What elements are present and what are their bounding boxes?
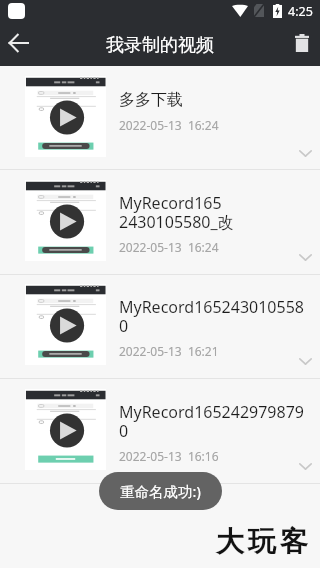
button[interactable]: Expand (291, 452, 319, 480)
button[interactable]: Expand (291, 243, 319, 271)
staticText: 2022-05-13 16:16 (119, 448, 219, 464)
button[interactable]: Delete (286, 27, 318, 59)
button[interactable]: MyRecord165242979879 0 (0, 379, 320, 483)
button[interactable]: Expand (291, 347, 319, 375)
button[interactable]: MyRecord165 2430105580_改 (0, 170, 320, 274)
staticText: 我录制的视频 (0, 34, 320, 57)
staticText: 2022-05-13 16:24 (119, 117, 219, 133)
staticText: MyRecord165243010558 0 (119, 296, 304, 336)
staticText: 2022-05-13 16:24 (119, 239, 219, 255)
staticText: MyRecord165242979879 0 (119, 401, 304, 441)
button[interactable]: 多多下载 (0, 66, 320, 170)
staticText: MyRecord165 2430105580_改 (119, 192, 234, 232)
staticText: 大玩客 (214, 524, 310, 559)
staticText: 多多下载 (119, 90, 183, 110)
button[interactable]: MyRecord165243010558 0 (0, 274, 320, 378)
button[interactable]: Expand (291, 139, 319, 167)
staticText: 4:25 (288, 3, 313, 20)
staticText: 重命名成功:) (120, 481, 201, 501)
staticText: 2022-05-13 16:21 (119, 343, 219, 359)
button[interactable]: Back (2, 27, 34, 59)
